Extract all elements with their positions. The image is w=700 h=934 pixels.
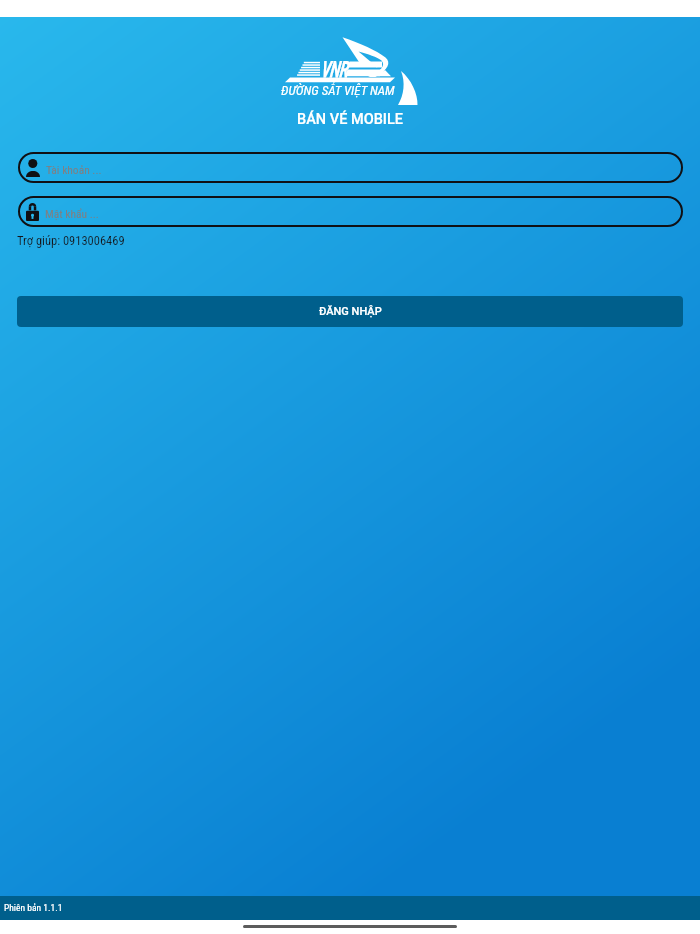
other: Account: [26, 159, 40, 177]
staticText: Tài khoản ...: [46, 163, 102, 176]
staticText: Phiên bản 1.1.1: [4, 902, 63, 913]
staticText: VNR: [321, 57, 348, 83]
staticText: ĐĂNG NHẬP: [319, 305, 382, 318]
other: Password: [26, 203, 39, 221]
staticText: Mật khẩu ...: [45, 207, 99, 220]
staticText: Trợ giúp: 0913006469: [17, 233, 125, 248]
button[interactable]: Password: [18, 196, 683, 227]
button[interactable]: ĐĂNG NHẬP: [17, 296, 683, 327]
button[interactable]: Account: [18, 152, 683, 183]
staticText: BÁN VÉ MOBILE: [0, 111, 700, 128]
staticText: ĐƯỜNG SẮT VIỆT NAM: [281, 83, 395, 98]
